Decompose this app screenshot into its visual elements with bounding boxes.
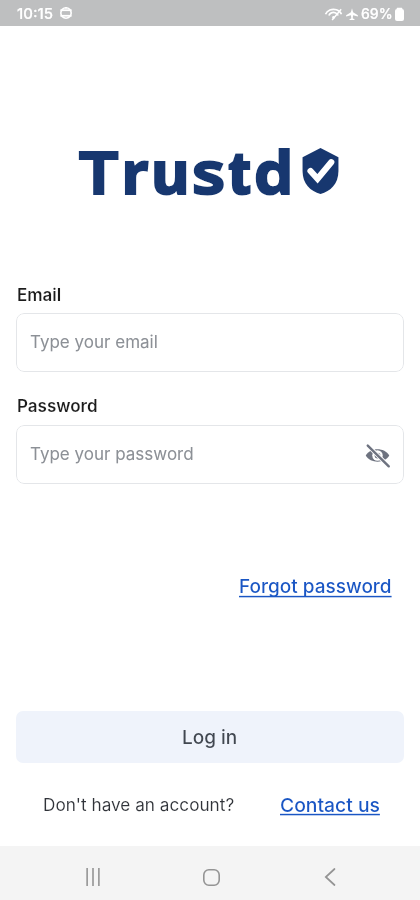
staticText: Don't have an account? [43, 794, 235, 815]
button[interactable]: Contact us [280, 793, 380, 816]
staticText: Forgot password [239, 575, 392, 598]
button[interactable]: Type your password [16, 425, 404, 484]
button[interactable]: Show password [360, 438, 394, 472]
staticText: 69% [361, 5, 393, 22]
staticText: Contact us [280, 793, 380, 816]
staticText: 10:15 [17, 4, 53, 22]
button[interactable]: Type your email [16, 313, 404, 372]
staticText: Type your email [30, 332, 158, 353]
button[interactable]: Back [305, 852, 355, 900]
staticText: Password [17, 396, 98, 417]
staticText: Trustd [78, 136, 296, 207]
button[interactable]: Recents [68, 852, 118, 900]
button[interactable]: Home [186, 852, 236, 900]
button[interactable]: Log in [16, 711, 404, 763]
staticText: Email [17, 285, 62, 306]
button[interactable]: Forgot password [237, 573, 394, 600]
staticText: Log in [182, 726, 238, 749]
staticText: Type your password [30, 444, 194, 465]
